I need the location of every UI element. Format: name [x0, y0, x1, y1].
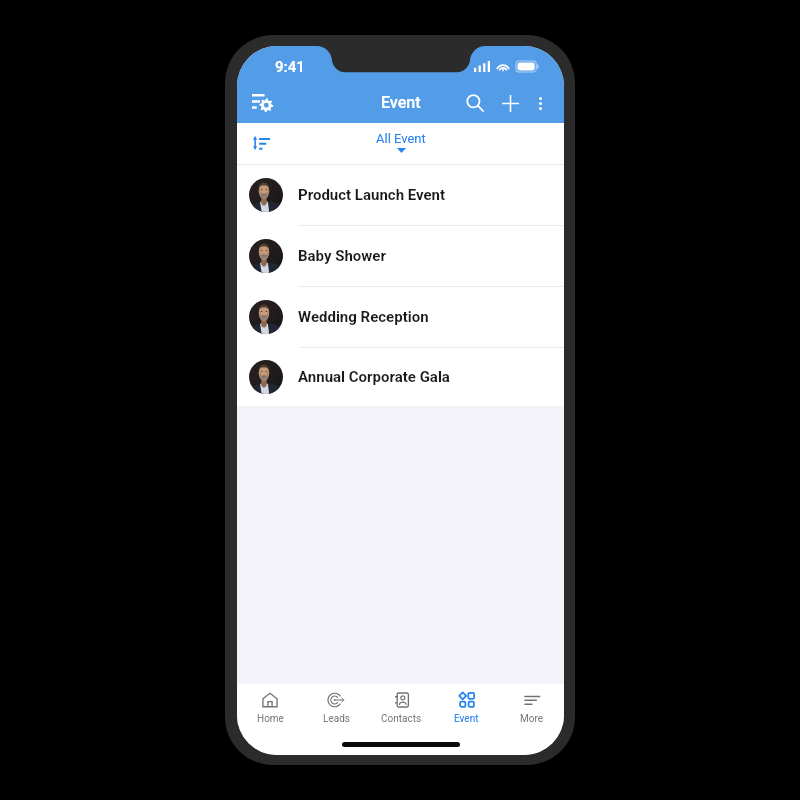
button[interactable]: Wedding Reception [237, 287, 564, 347]
button[interactable]: Search [459, 87, 491, 119]
button[interactable]: More [499, 692, 564, 725]
staticText: 9:41 [275, 58, 305, 76]
staticText: All Event [376, 131, 426, 146]
staticText: Leads [323, 713, 350, 725]
button[interactable]: More options [527, 90, 553, 116]
button[interactable]: Product Launch Event [237, 165, 564, 225]
button[interactable]: All Event [376, 131, 426, 153]
button[interactable]: Annual Corporate Gala [237, 348, 564, 406]
staticText: Contacts [381, 713, 422, 725]
staticText: Annual Corporate Gala [298, 368, 450, 386]
button[interactable]: Baby Shower [237, 226, 564, 286]
button[interactable]: Sort [246, 129, 276, 159]
button[interactable]: Home [237, 692, 303, 725]
staticText: More [520, 713, 544, 725]
button[interactable]: Leads [303, 692, 369, 725]
staticText: Event [454, 713, 479, 725]
staticText: Product Launch Event [298, 186, 446, 204]
staticText: Home [257, 713, 284, 725]
staticText: Event [381, 93, 421, 112]
staticText: Wedding Reception [298, 308, 429, 326]
button[interactable]: Contacts [369, 692, 434, 725]
staticText: Baby Shower [298, 247, 386, 265]
button[interactable]: Add [494, 87, 526, 119]
button[interactable]: Event [434, 692, 499, 725]
button[interactable]: Filter settings [243, 84, 281, 122]
